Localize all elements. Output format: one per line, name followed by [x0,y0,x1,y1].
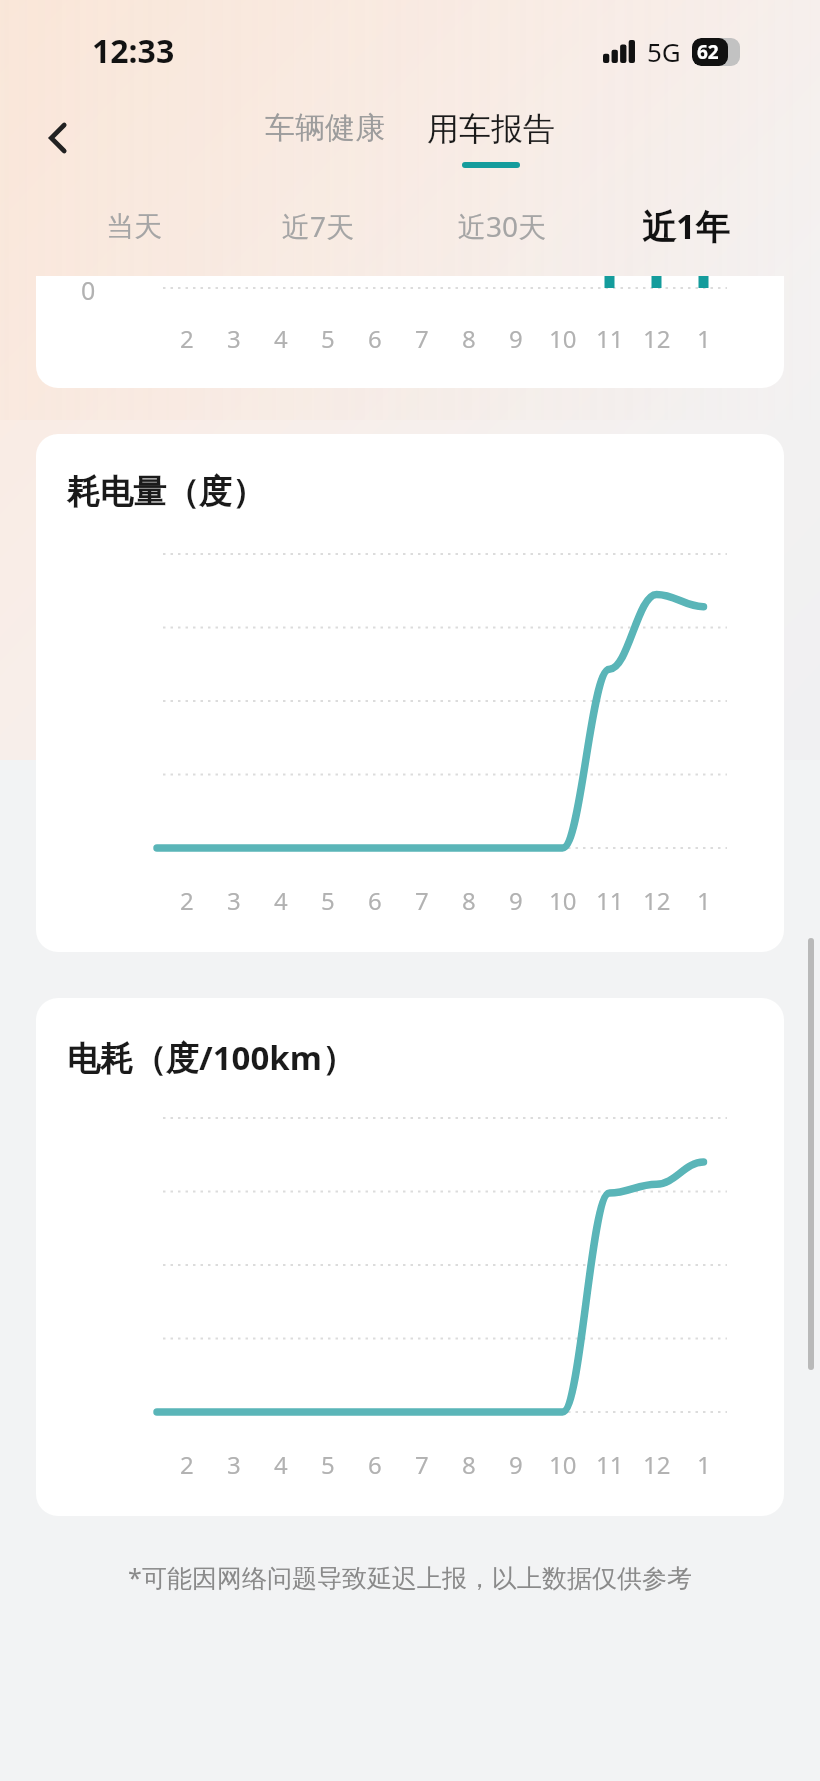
staticText: 0 [81,276,96,307]
staticText: 近1年 [642,203,730,249]
staticText: 近7天 [282,207,355,245]
staticText: 4 [274,1448,288,1481]
staticText: 当天 [106,209,162,244]
staticText: 5 [321,1448,335,1481]
button[interactable]: 用车报告 [415,105,567,172]
staticText: 2 [180,884,194,917]
staticText: 8 [462,1448,476,1481]
staticText: 9 [509,884,523,917]
staticText: 6 [368,884,382,917]
button[interactable]: 电耗（度/100km） [36,998,784,1516]
button[interactable]: Back [28,108,88,168]
staticText: 近30天 [458,207,547,245]
staticText: 6 [368,1448,382,1481]
staticText: 2 [180,1448,194,1481]
button[interactable]: 近1年 [594,180,778,272]
button[interactable]: 0 [36,276,784,388]
staticText: 11 [596,322,624,355]
staticText: *可能因网络问题导致延迟上报，以上数据仅供参考 [0,1560,820,1594]
staticText: 4 [274,322,288,355]
staticText: 10 [549,322,577,355]
staticText: 6 [368,322,382,355]
staticText: 10 [549,884,577,917]
staticText: 5 [321,322,335,355]
staticText: 8 [462,322,476,355]
staticText: 5 [321,884,335,917]
staticText: 用车报告 [427,109,555,149]
button[interactable]: 车辆健康 [253,105,397,151]
staticText: 1 [697,1448,711,1481]
button[interactable]: 当天 [42,180,226,272]
staticText: 5G [647,34,681,69]
staticText: 4 [274,884,288,917]
staticText: 8 [462,884,476,917]
button[interactable]: 近7天 [226,180,410,272]
staticText: 1 [697,322,711,355]
staticText: 11 [596,884,624,917]
staticText: 12 [643,1448,671,1481]
staticText: 7 [415,322,429,355]
button[interactable]: 近30天 [410,180,594,272]
staticText: 7 [415,884,429,917]
staticText: 电耗（度/100km） [67,1035,355,1080]
staticText: 3 [227,884,241,917]
staticText: 3 [227,1448,241,1481]
staticText: 1 [697,884,711,917]
staticText: 12 [643,884,671,917]
staticText: 11 [596,1448,624,1481]
staticText: 12 [643,322,671,355]
staticText: 耗电量（度） [67,471,265,513]
staticText: 62 [697,39,719,65]
staticText: 9 [509,1448,523,1481]
staticText: 7 [415,1448,429,1481]
button[interactable]: 耗电量（度） [36,434,784,952]
staticText: 9 [509,322,523,355]
staticText: 10 [549,1448,577,1481]
staticText: 2 [180,322,194,355]
staticText: 12:33 [92,29,175,73]
staticText: 车辆健康 [265,109,385,147]
staticText: 3 [227,322,241,355]
